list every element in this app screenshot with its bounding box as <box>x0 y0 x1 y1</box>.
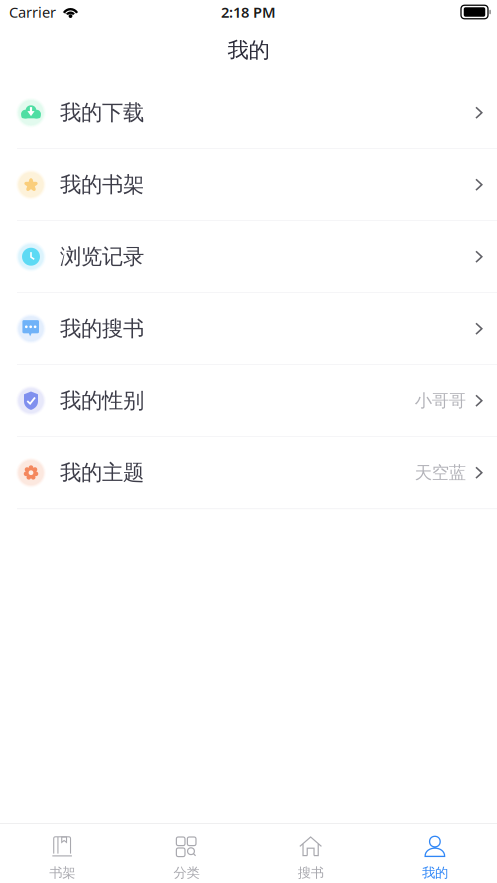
button[interactable]: 我的书架 <box>0 149 497 221</box>
button[interactable]: 浏览记录 <box>0 221 497 293</box>
staticText: 2:18 PM <box>221 2 276 22</box>
staticText: 我的搜书 <box>60 316 144 342</box>
button[interactable]: 我的 <box>373 824 497 883</box>
staticText: 我的主题 <box>60 460 144 486</box>
staticText: 搜书 <box>298 865 324 881</box>
staticText: 小哥哥 <box>415 390 466 411</box>
button[interactable]: 我的主题 <box>0 437 497 509</box>
staticText: 我的 <box>422 865 448 881</box>
staticText: 我的性别 <box>60 388 144 414</box>
button[interactable]: 我的性别 <box>0 365 497 437</box>
staticText: 浏览记录 <box>60 244 144 270</box>
button[interactable]: 我的下载 <box>0 77 497 149</box>
button[interactable]: 我的搜书 <box>0 293 497 365</box>
staticText: 天空蓝 <box>415 462 466 483</box>
staticText: 我的下载 <box>60 100 144 126</box>
staticText: 我的书架 <box>60 172 144 198</box>
staticText: 我的 <box>227 37 269 63</box>
button[interactable]: 搜书 <box>248 824 373 883</box>
staticText: Carrier <box>9 2 56 22</box>
button[interactable]: 分类 <box>124 824 248 883</box>
staticText: 分类 <box>173 865 199 881</box>
button[interactable]: 书架 <box>0 824 124 883</box>
staticText: 书架 <box>49 865 75 881</box>
